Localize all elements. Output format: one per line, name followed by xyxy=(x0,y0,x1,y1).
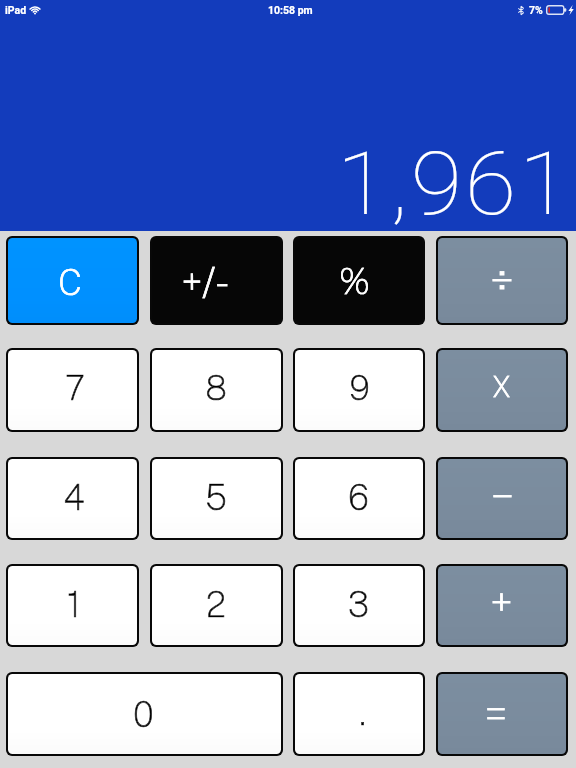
button[interactable]: 4 xyxy=(8,459,137,538)
staticText: +/- xyxy=(181,258,230,305)
button[interactable]: 7 xyxy=(8,350,137,430)
staticText: 0 xyxy=(133,694,154,735)
staticText: 8 xyxy=(205,368,227,408)
staticText: . xyxy=(359,693,366,733)
staticText: 7 xyxy=(65,368,85,408)
button[interactable]: 6 xyxy=(295,459,423,538)
button[interactable]: + xyxy=(438,566,566,645)
button[interactable]: 8 xyxy=(152,350,281,430)
staticText: = xyxy=(485,689,507,738)
staticText: 7% xyxy=(529,4,543,16)
staticText: 3 xyxy=(348,584,369,625)
staticText: ÷ xyxy=(490,253,514,307)
staticText: 4 xyxy=(63,477,85,518)
staticText: 1 xyxy=(67,584,81,625)
staticText: 9 xyxy=(349,368,370,408)
button[interactable]: 5 xyxy=(152,459,281,538)
staticText: + xyxy=(490,577,513,628)
button[interactable]: 2 xyxy=(152,566,281,645)
staticText: 0 xyxy=(133,694,154,735)
staticText: X xyxy=(492,370,511,403)
button[interactable]: X xyxy=(438,350,566,430)
staticText: 5 xyxy=(205,477,227,518)
staticText: 8 xyxy=(205,368,227,408)
staticText: 2 xyxy=(206,584,226,625)
staticText: +/- xyxy=(181,258,230,305)
staticText: = xyxy=(485,689,507,738)
button[interactable]: ÷ xyxy=(438,238,566,323)
staticText: 9 xyxy=(349,368,370,408)
staticText: 6 xyxy=(348,477,369,518)
staticText: % xyxy=(339,261,370,302)
button[interactable]: 1 xyxy=(8,566,137,645)
staticText: 1 xyxy=(67,584,81,625)
staticText: iPad xyxy=(5,4,27,16)
button[interactable]: = xyxy=(438,674,566,754)
button[interactable]: − xyxy=(438,459,566,538)
staticText: − xyxy=(491,470,514,522)
staticText: 2 xyxy=(206,584,226,625)
button[interactable]: 0 xyxy=(8,674,281,754)
staticText: C xyxy=(58,262,82,303)
staticText: C xyxy=(58,262,82,303)
staticText: 4 xyxy=(63,477,85,518)
staticText: 5 xyxy=(205,477,227,518)
staticText: 3 xyxy=(348,584,369,625)
button[interactable]: 9 xyxy=(295,350,423,430)
staticText: 1,961 xyxy=(336,133,573,235)
staticText: % xyxy=(339,261,370,302)
staticText: . xyxy=(359,693,366,733)
button[interactable]: C xyxy=(8,238,137,323)
staticText: − xyxy=(491,470,514,522)
button[interactable]: . xyxy=(295,674,423,754)
button[interactable]: 3 xyxy=(295,566,423,645)
staticText: 7 xyxy=(65,368,85,408)
staticText: 6 xyxy=(348,477,369,518)
staticText: 10:58 pm xyxy=(268,4,313,16)
staticText: X xyxy=(492,370,511,403)
button[interactable]: +/- xyxy=(152,238,281,323)
staticText: + xyxy=(490,577,513,628)
staticText: ÷ xyxy=(490,253,514,307)
button[interactable]: % xyxy=(295,238,423,323)
